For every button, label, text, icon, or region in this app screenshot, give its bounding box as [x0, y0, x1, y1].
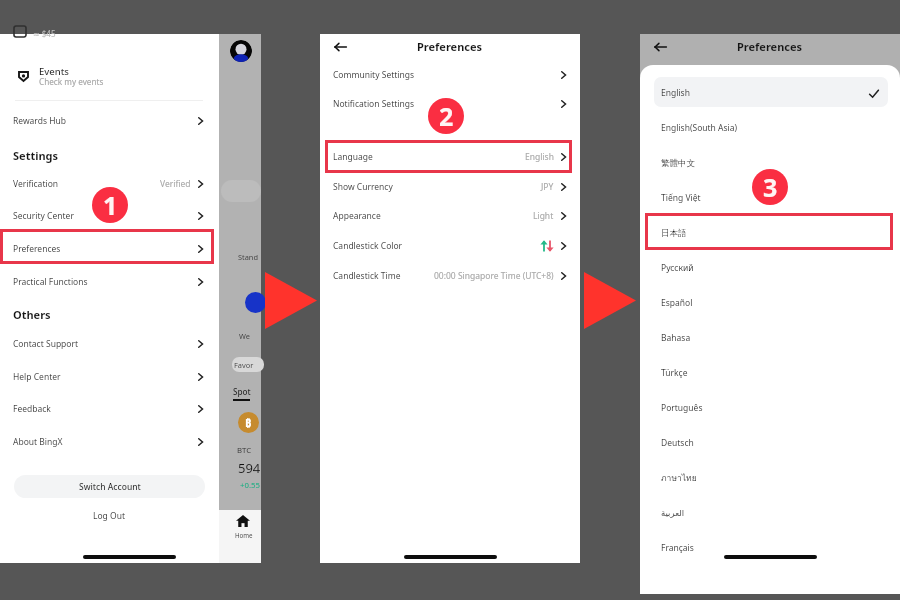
staticText: Language	[333, 151, 373, 163]
staticText: 3	[763, 170, 778, 204]
staticText: ภาษาไทย	[661, 471, 697, 485]
staticText: Feedback	[13, 403, 51, 415]
staticText: BTC	[237, 445, 252, 456]
button[interactable]: Log Out	[0, 506, 217, 526]
staticText: Security Center	[13, 210, 74, 222]
staticText: Candlestick Time	[333, 270, 401, 282]
staticText: +0.55	[240, 480, 260, 491]
staticText: العربية	[661, 508, 685, 518]
staticText: 2	[439, 99, 454, 133]
button[interactable]: Contact Support	[0, 329, 217, 359]
staticText: Français	[661, 542, 694, 554]
staticText: Favor	[234, 360, 254, 370]
button[interactable]: Tiếng Việt	[640, 182, 900, 214]
staticText: Preferences	[13, 243, 61, 255]
staticText: Español	[661, 297, 693, 309]
button[interactable]: Rewards Hub	[0, 106, 217, 136]
staticText: Switch Account	[79, 481, 141, 493]
staticText: Deutsch	[661, 437, 694, 449]
button[interactable]	[654, 77, 888, 107]
button[interactable]: Appearance	[320, 201, 580, 230]
staticText: 594	[238, 459, 261, 477]
button[interactable]: Français	[640, 532, 900, 564]
staticText: ₿	[245, 415, 252, 430]
staticText: Preferences	[737, 39, 803, 54]
staticText: English	[525, 151, 554, 163]
staticText: JPY	[541, 181, 554, 193]
staticText: 00:00 Singapore Time (UTC+8)	[434, 270, 554, 282]
button[interactable]: Language	[320, 142, 580, 171]
staticText: Others	[13, 307, 51, 322]
staticText: Português	[661, 402, 703, 414]
button[interactable]: ภาษาไทย	[640, 462, 900, 494]
button[interactable]: Back	[650, 36, 671, 57]
staticText: Show Currency	[333, 181, 393, 193]
staticText: Home	[235, 531, 253, 539]
staticText: Log Out	[93, 510, 125, 522]
staticText: 1	[103, 188, 118, 222]
staticText: Bahasa	[661, 332, 691, 344]
staticText: English(South Asia)	[661, 122, 738, 134]
staticText: Rewards Hub	[13, 115, 66, 127]
staticText: Appearance	[333, 210, 381, 222]
button[interactable]: Help Center	[0, 362, 217, 392]
button[interactable]: Português	[640, 392, 900, 424]
staticText: Events	[39, 65, 69, 78]
staticText: Spot	[233, 386, 251, 397]
button[interactable]: Preferences	[0, 234, 217, 264]
button[interactable]: English	[640, 77, 900, 109]
staticText: Türkçe	[661, 367, 688, 379]
staticText: English	[661, 87, 690, 99]
staticText: Verified	[160, 178, 191, 190]
button[interactable]: Español	[640, 287, 900, 319]
staticText: Check my events	[39, 76, 104, 87]
button[interactable]: Switch Account	[14, 475, 205, 498]
button[interactable]: English(South Asia)	[640, 112, 900, 144]
button[interactable]: Feedback	[0, 394, 217, 424]
staticText: Community Settings	[333, 69, 415, 81]
button[interactable]: Practical Functions	[0, 267, 217, 297]
button[interactable]: Türkçe	[640, 357, 900, 389]
staticText: Preferences	[417, 39, 483, 54]
button[interactable]: Notification Settings	[320, 89, 580, 118]
button[interactable]: About BingX	[0, 427, 217, 457]
staticText: ≈ $45	[33, 28, 56, 39]
staticText: Help Center	[13, 371, 61, 383]
button[interactable]: Candlestick Time	[320, 261, 580, 290]
staticText: Tiếng Việt	[661, 192, 701, 204]
staticText: We	[239, 331, 250, 341]
button[interactable]: Verification	[0, 169, 217, 199]
button[interactable]: 繁體中文	[640, 147, 900, 179]
button[interactable]: Security Center	[0, 201, 217, 231]
staticText: Settings	[13, 148, 59, 163]
staticText: About BingX	[13, 436, 63, 448]
button[interactable]: Bahasa	[640, 322, 900, 354]
button[interactable]: Community Settings	[320, 60, 580, 89]
staticText: Stand	[238, 252, 258, 262]
button[interactable]: 日本語	[640, 217, 900, 249]
button[interactable]: Candlestick Color	[320, 231, 580, 260]
staticText: Candlestick Color	[333, 240, 403, 252]
button[interactable]: Deutsch	[640, 427, 900, 459]
staticText: 繁體中文	[661, 158, 695, 169]
staticText: Notification Settings	[333, 98, 415, 110]
staticText: Light	[533, 210, 554, 222]
button[interactable]: Back	[330, 36, 351, 57]
staticText: Verification	[13, 178, 59, 190]
staticText: 日本語	[661, 228, 687, 239]
button[interactable]: Show Currency	[320, 172, 580, 201]
staticText: Русский	[661, 262, 694, 274]
staticText: Practical Functions	[13, 276, 88, 288]
button[interactable]: العربية	[640, 497, 900, 529]
button[interactable]: Русский	[640, 252, 900, 284]
staticText: Contact Support	[13, 338, 79, 350]
